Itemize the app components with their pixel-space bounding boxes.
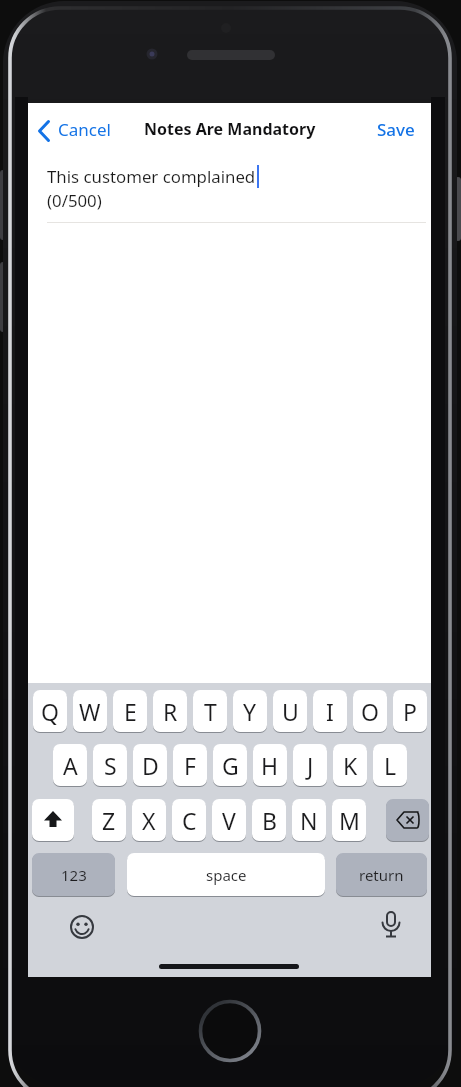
button[interactable]: [377, 911, 405, 941]
button[interactable]: [32, 799, 74, 841]
staticText: Z: [102, 805, 116, 836]
button[interactable]: Q: [33, 690, 67, 732]
button[interactable]: B: [252, 799, 286, 841]
button[interactable]: T: [193, 690, 227, 732]
staticText: E: [124, 696, 137, 727]
button[interactable]: C: [172, 799, 206, 841]
staticText: D: [142, 750, 159, 781]
button[interactable]: A: [53, 744, 87, 786]
button[interactable]: Save: [377, 118, 415, 141]
staticText: C: [182, 805, 197, 836]
staticText: P: [403, 696, 417, 727]
staticText: W: [79, 696, 101, 727]
button[interactable]: U: [273, 690, 307, 732]
staticText: X: [142, 805, 156, 836]
staticText: O: [361, 696, 379, 727]
staticText: This customer complained: [47, 165, 256, 188]
staticText: Save: [377, 118, 415, 141]
staticText: (0/500): [47, 189, 102, 212]
button[interactable]: D: [133, 744, 167, 786]
button[interactable]: 123: [32, 853, 115, 896]
button[interactable]: [386, 799, 429, 841]
staticText: N: [300, 805, 318, 836]
button[interactable]: return: [336, 853, 427, 896]
staticText: 123: [61, 865, 87, 885]
button[interactable]: V: [212, 799, 246, 841]
staticText: space: [206, 865, 247, 885]
staticText: U: [282, 696, 299, 727]
staticText: B: [262, 805, 277, 836]
button[interactable]: M: [332, 799, 366, 841]
button[interactable]: Y: [233, 690, 267, 732]
staticText: J: [307, 750, 314, 781]
staticText: G: [222, 750, 239, 781]
button[interactable]: space: [127, 853, 325, 896]
staticText: S: [104, 750, 117, 781]
button[interactable]: F: [173, 744, 207, 786]
button[interactable]: P: [393, 690, 427, 732]
button[interactable]: H: [253, 744, 287, 786]
button[interactable]: Z: [92, 799, 126, 841]
staticText: R: [163, 696, 178, 727]
staticText: Q: [41, 696, 59, 727]
staticText: Notes Are Mandatory: [144, 118, 316, 140]
button[interactable]: S: [93, 744, 127, 786]
staticText: T: [204, 696, 217, 727]
staticText: V: [222, 805, 236, 836]
button[interactable]: L: [373, 744, 407, 786]
button[interactable]: X: [132, 799, 166, 841]
staticText: K: [343, 750, 358, 781]
button[interactable]: [68, 913, 96, 941]
staticText: I: [326, 696, 334, 727]
staticText: return: [359, 865, 404, 885]
staticText: M: [339, 805, 360, 836]
button[interactable]: N: [292, 799, 326, 841]
button[interactable]: J: [293, 744, 327, 786]
button[interactable]: Cancel: [58, 118, 111, 141]
staticText: L: [384, 750, 397, 781]
button[interactable]: K: [333, 744, 367, 786]
staticText: H: [261, 750, 279, 781]
button[interactable]: R: [153, 690, 187, 732]
staticText: F: [184, 750, 196, 781]
button[interactable]: W: [73, 690, 107, 732]
button[interactable]: E: [113, 690, 147, 732]
button[interactable]: O: [353, 690, 387, 732]
staticText: Cancel: [58, 118, 111, 141]
staticText: Y: [243, 696, 257, 727]
button[interactable]: G: [213, 744, 247, 786]
button[interactable]: I: [313, 690, 347, 732]
staticText: A: [63, 750, 78, 781]
